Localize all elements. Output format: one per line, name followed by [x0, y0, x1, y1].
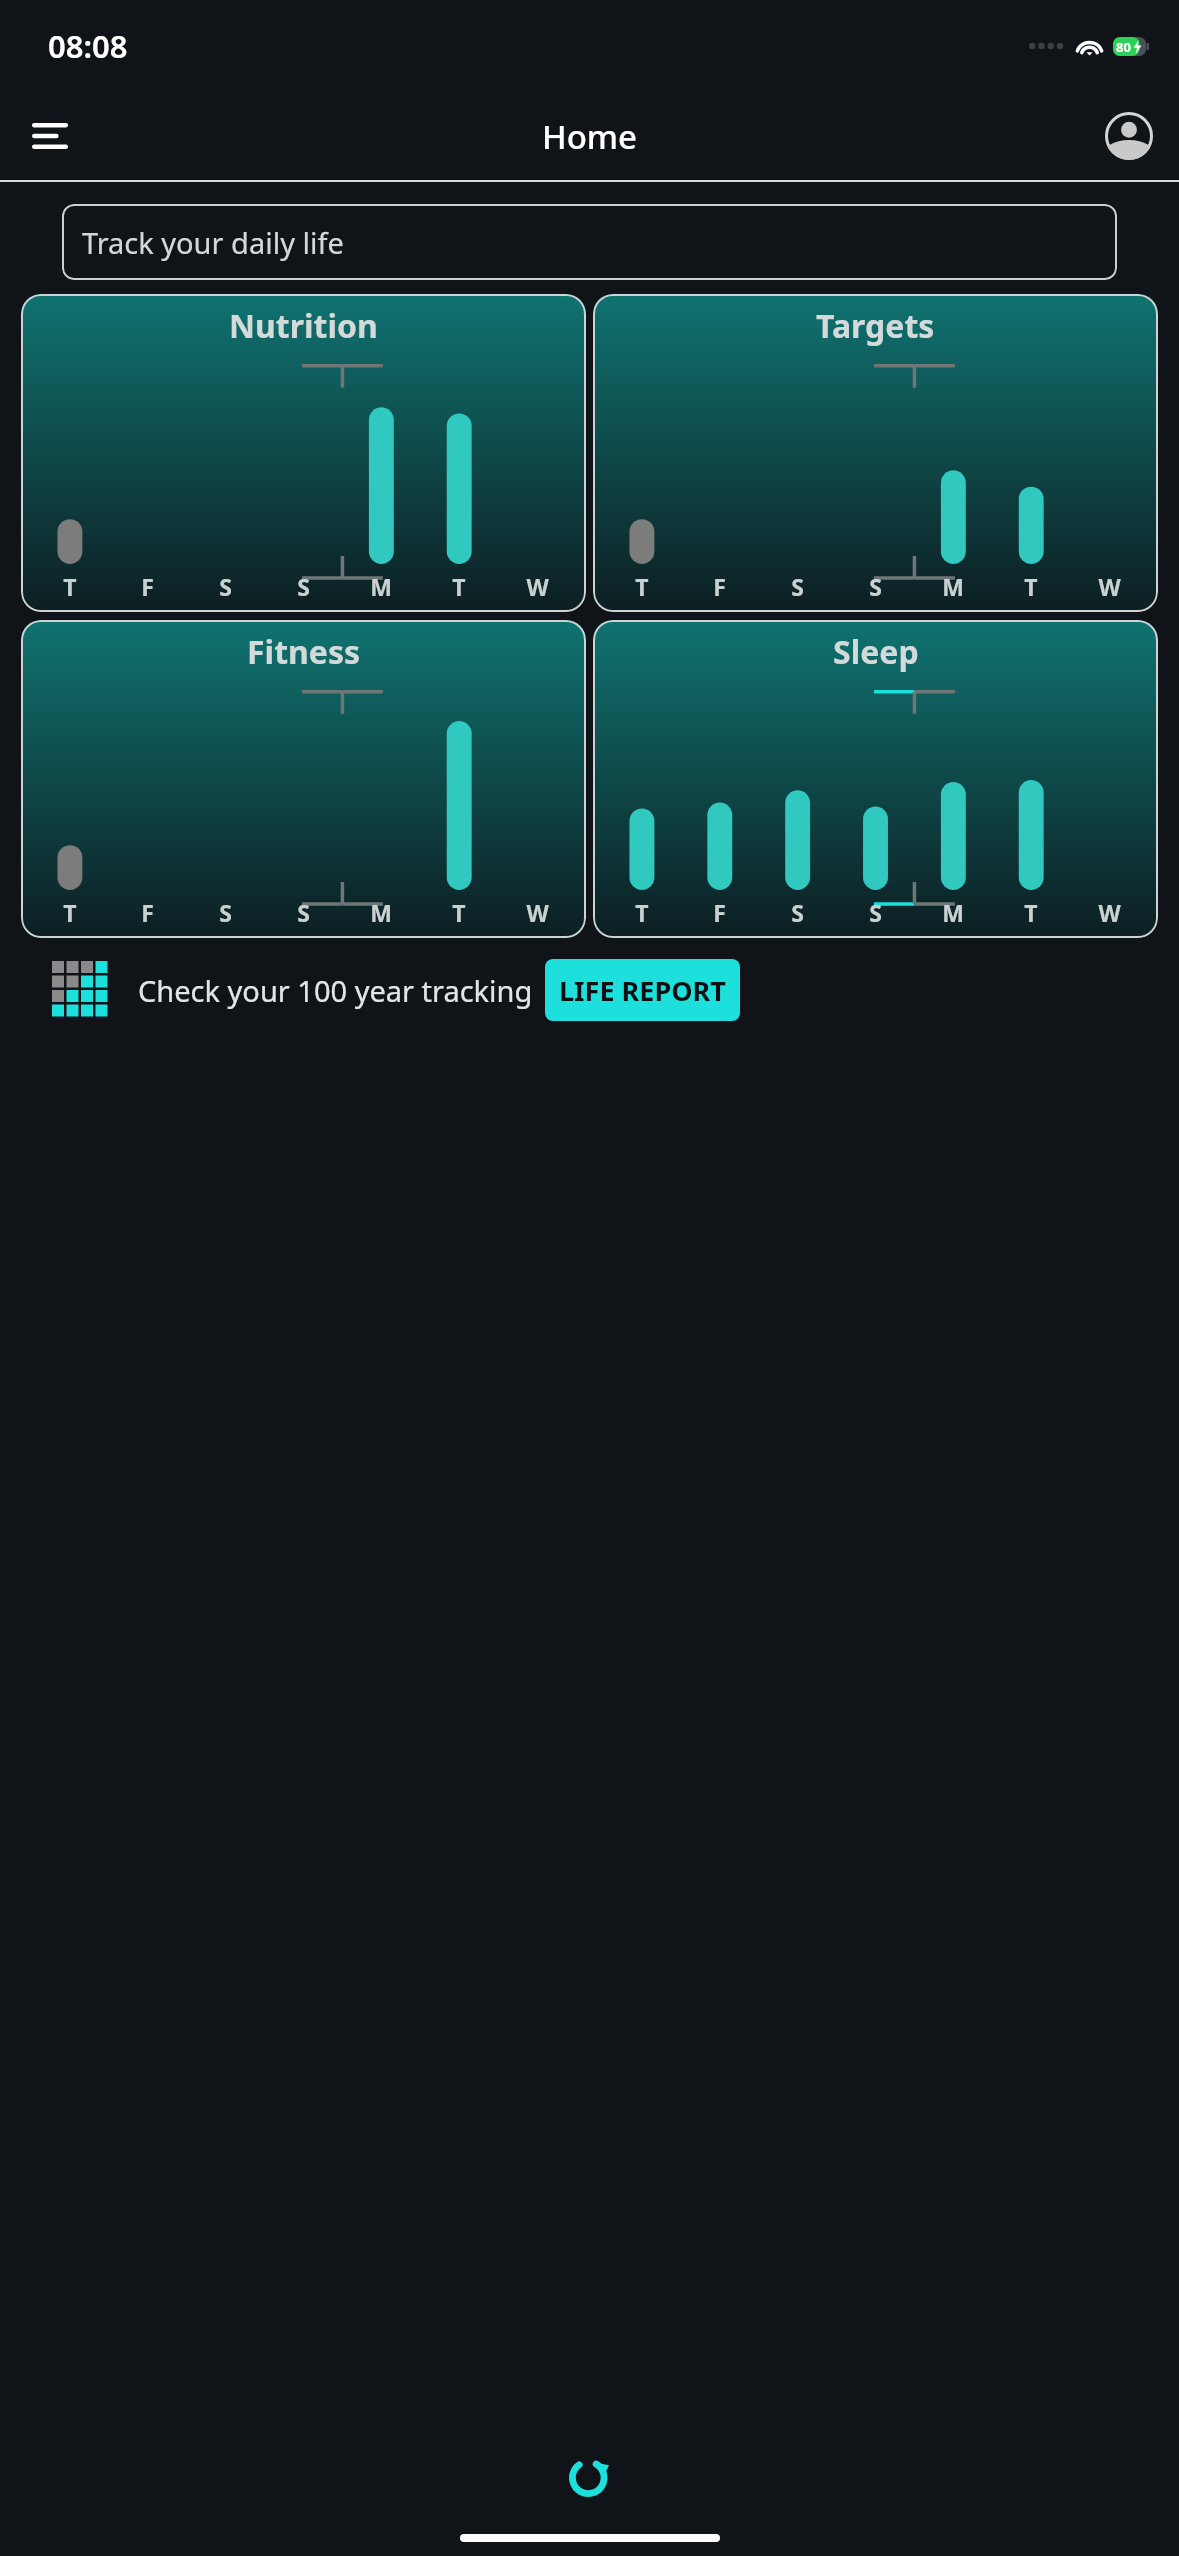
- staticText: S: [297, 897, 310, 928]
- button[interactable]: Nutrition: [21, 294, 586, 612]
- staticText: 08:08: [48, 25, 128, 67]
- staticText: S: [869, 571, 882, 602]
- staticText: T: [635, 897, 649, 928]
- staticText: M: [370, 897, 392, 928]
- staticText: Fitness: [247, 630, 361, 674]
- staticText: F: [141, 897, 154, 928]
- button[interactable]: Fitness: [21, 620, 586, 938]
- button[interactable]: Refresh: [562, 2448, 618, 2504]
- staticText: Nutrition: [229, 304, 378, 348]
- staticText: Sleep: [833, 630, 919, 674]
- staticText: W: [1098, 897, 1121, 928]
- button[interactable]: Sleep: [593, 620, 1158, 938]
- staticText: F: [713, 897, 726, 928]
- staticText: S: [297, 571, 310, 602]
- staticText: T: [1024, 571, 1038, 602]
- staticText: T: [452, 897, 466, 928]
- staticText: M: [942, 571, 964, 602]
- staticText: T: [63, 571, 77, 602]
- button[interactable]: Track your daily life: [62, 204, 1117, 280]
- staticText: 80: [1116, 38, 1131, 56]
- staticText: Targets: [816, 304, 935, 348]
- staticText: S: [219, 571, 232, 602]
- button[interactable]: Menu: [22, 108, 78, 164]
- button[interactable]: LIFE REPORT: [545, 959, 740, 1021]
- staticText: W: [526, 571, 549, 602]
- staticText: T: [63, 897, 77, 928]
- staticText: M: [942, 897, 964, 928]
- staticText: T: [635, 571, 649, 602]
- staticText: F: [141, 571, 154, 602]
- staticText: S: [869, 897, 882, 928]
- staticText: LIFE REPORT: [559, 972, 726, 1009]
- staticText: Home: [542, 114, 638, 159]
- staticText: T: [1024, 897, 1038, 928]
- staticText: T: [452, 571, 466, 602]
- staticText: Track your daily life: [82, 223, 344, 262]
- staticText: W: [526, 897, 549, 928]
- button[interactable]: Targets: [593, 294, 1158, 612]
- button[interactable]: Profile: [1101, 108, 1157, 164]
- staticText: Check your 100 year tracking: [138, 971, 533, 1010]
- staticText: W: [1098, 571, 1121, 602]
- staticText: S: [791, 571, 804, 602]
- staticText: S: [219, 897, 232, 928]
- staticText: F: [713, 571, 726, 602]
- staticText: M: [370, 571, 392, 602]
- staticText: S: [791, 897, 804, 928]
